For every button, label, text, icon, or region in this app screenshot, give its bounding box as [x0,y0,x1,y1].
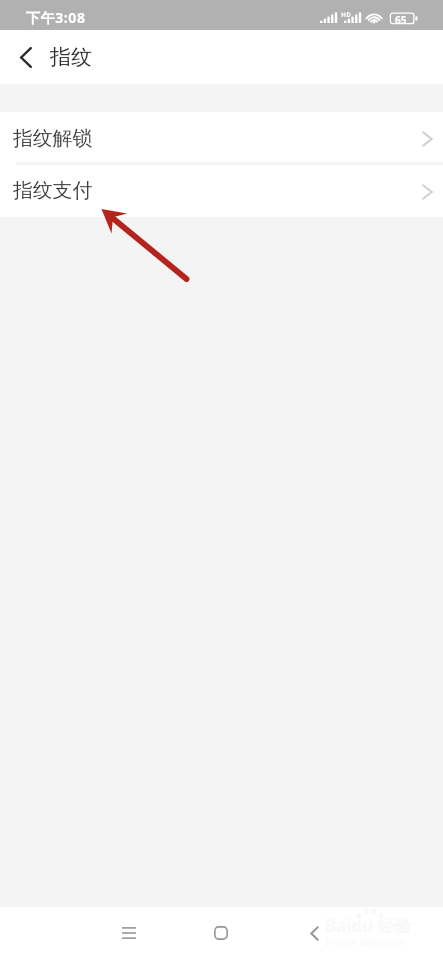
button[interactable]: 指纹解锁 [0,112,443,164]
button[interactable]: 返回 [290,915,338,951]
staticText: 65 [395,13,407,27]
button[interactable]: 主页 [197,915,245,951]
staticText: 指纹解锁 [13,126,93,151]
staticText: 指纹 [50,44,92,70]
staticText: 指纹支付 [13,178,93,203]
button[interactable]: 指纹支付 [0,164,443,217]
staticText: 下午3:08 [26,8,86,27]
button[interactable]: 最近任务 [105,915,153,951]
button[interactable]: 返回 [4,30,48,84]
